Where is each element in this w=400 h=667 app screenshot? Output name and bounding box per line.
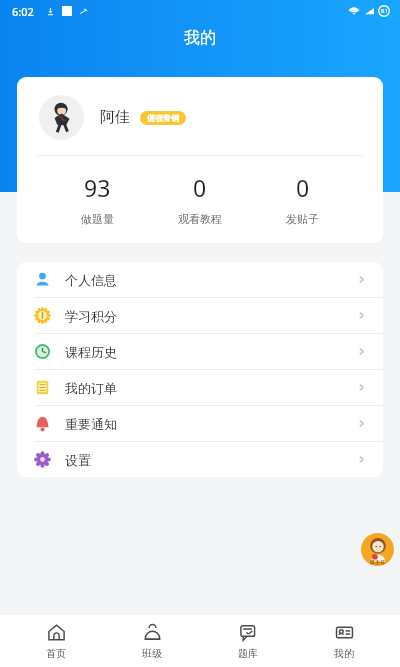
staticText: 发贴子 [286,212,319,226]
button[interactable]: 班级 [112,615,192,667]
button[interactable]: 个人信息 [17,262,383,297]
staticText: 做题量 [81,212,114,226]
staticText: 81 [381,7,388,15]
button[interactable]: 设置 [17,442,383,477]
button[interactable]: 我的订单 [17,370,383,405]
staticText: 个人信息 [65,272,117,288]
button[interactable]: 首页 [16,615,96,667]
staticText: 93 [84,172,111,203]
staticText: 倔强青铜 [147,113,179,123]
staticText: 设置 [65,452,91,468]
button[interactable]: 我的 [304,615,384,667]
staticText: 题库 [238,647,258,660]
staticText: 我的 [184,28,216,48]
button[interactable]: 课程历史 [17,334,383,369]
staticText: 观看教程 [178,212,222,226]
staticText: 6:02 [12,4,34,19]
button[interactable]: 题库 [208,615,288,667]
staticText: 学习积分 [65,308,117,324]
button[interactable]: 班主任 [361,533,394,566]
staticText: 0 [193,172,207,203]
staticText: 课程历史 [65,344,117,360]
staticText: 班级 [142,647,162,660]
staticText: 0 [296,172,310,203]
staticText: 我的订单 [65,380,117,396]
staticText: 我的 [334,647,354,660]
staticText: 重要通知 [65,416,117,432]
staticText: 首页 [46,647,66,660]
staticText: 班主任 [370,559,385,565]
button[interactable]: 重要通知 [17,406,383,441]
button[interactable]: 学习积分 [17,298,383,333]
staticText: 阿佳 [100,108,130,127]
